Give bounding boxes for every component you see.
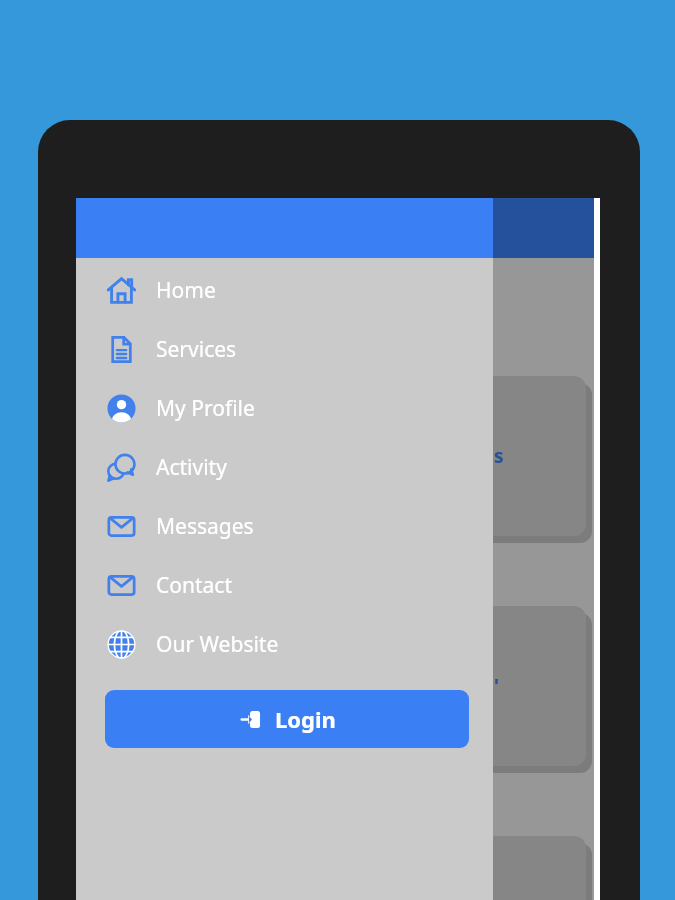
staticText: Login <box>275 704 336 734</box>
staticText: Services <box>156 335 237 364</box>
button[interactable]: Contact <box>76 556 493 615</box>
staticText: Activity <box>156 453 227 482</box>
staticText: Home <box>156 276 216 305</box>
button[interactable]: Activity <box>76 438 493 497</box>
staticText: Messages <box>156 512 254 541</box>
staticText: My Profile <box>156 394 255 423</box>
button[interactable]: Login <box>105 690 469 748</box>
button[interactable]: My Profile <box>76 379 493 438</box>
staticText: Contact <box>156 571 232 600</box>
button[interactable]: Services <box>76 320 493 379</box>
button[interactable]: Home <box>76 261 493 320</box>
staticText: Our Website <box>156 630 279 659</box>
button[interactable]: Our Website <box>76 615 493 674</box>
staticText: ' <box>494 673 500 699</box>
staticText: s <box>494 443 504 469</box>
button[interactable]: Messages <box>76 497 493 556</box>
